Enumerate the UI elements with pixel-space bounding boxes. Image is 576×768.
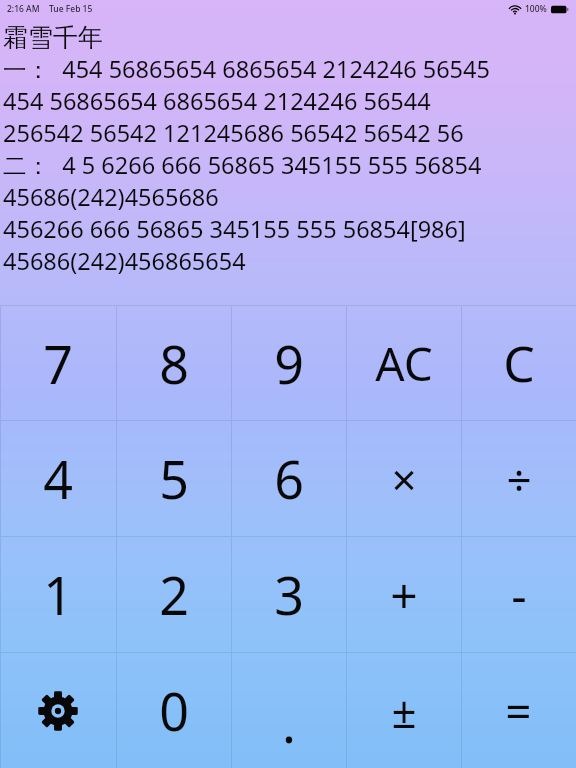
button[interactable]: 5: [116, 421, 231, 536]
staticText: Tue Feb 15: [49, 3, 93, 15]
staticText: 霜雪千年: [3, 22, 103, 53]
staticText: ÷: [506, 449, 532, 509]
staticText: C: [503, 329, 535, 397]
button[interactable]: 4: [0, 421, 116, 536]
button[interactable]: 6: [231, 421, 346, 536]
staticText: 2: [159, 559, 189, 630]
button[interactable]: =: [461, 653, 576, 768]
button[interactable]: Settings: [0, 653, 116, 768]
staticText: 1: [43, 559, 73, 630]
button[interactable]: 9: [231, 306, 346, 420]
staticText: 4: [43, 443, 73, 514]
staticText: 0: [159, 675, 189, 746]
staticText: 9: [274, 328, 304, 399]
button[interactable]: 8: [116, 306, 231, 420]
button[interactable]: ×: [346, 421, 461, 536]
button[interactable]: C: [461, 306, 576, 420]
button[interactable]: 7: [0, 306, 116, 420]
button[interactable]: ±: [346, 653, 461, 768]
staticText: +: [390, 562, 418, 627]
staticText: 5: [159, 443, 189, 514]
button[interactable]: ÷: [461, 421, 576, 536]
button[interactable]: AC: [346, 306, 461, 420]
button[interactable]: 1: [0, 537, 116, 652]
staticText: 45686(242)4565686: [3, 181, 219, 213]
staticText: 100%: [525, 3, 547, 15]
button[interactable]: .: [231, 653, 346, 768]
staticText: ±: [391, 681, 417, 741]
staticText: 454 56865654 6865654 2124246 56544: [3, 85, 431, 117]
staticText: 7: [43, 328, 73, 399]
button[interactable]: +: [346, 537, 461, 652]
staticText: AC: [375, 332, 433, 395]
staticText: 一： 454 56865654 6865654 2124246 56545: [3, 53, 490, 85]
staticText: 45686(242)456865654: [3, 245, 246, 277]
staticText: 256542 56542 121245686 56542 56542 56: [3, 117, 464, 149]
staticText: 456266 666 56865 345155 555 56854[986]: [3, 213, 466, 245]
button[interactable]: 3: [231, 537, 346, 652]
staticText: 8: [159, 328, 189, 399]
staticText: -: [511, 562, 527, 627]
staticText: 6: [274, 443, 304, 514]
staticText: ×: [391, 449, 417, 509]
staticText: .: [282, 687, 296, 758]
staticText: 3: [274, 559, 304, 630]
button[interactable]: -: [461, 537, 576, 652]
staticText: 2:16 AM: [7, 3, 40, 15]
button[interactable]: 0: [116, 653, 231, 768]
button[interactable]: 2: [116, 537, 231, 652]
staticText: 二： 4 5 6266 666 56865 345155 555 56854: [3, 149, 482, 181]
staticText: =: [505, 679, 532, 742]
